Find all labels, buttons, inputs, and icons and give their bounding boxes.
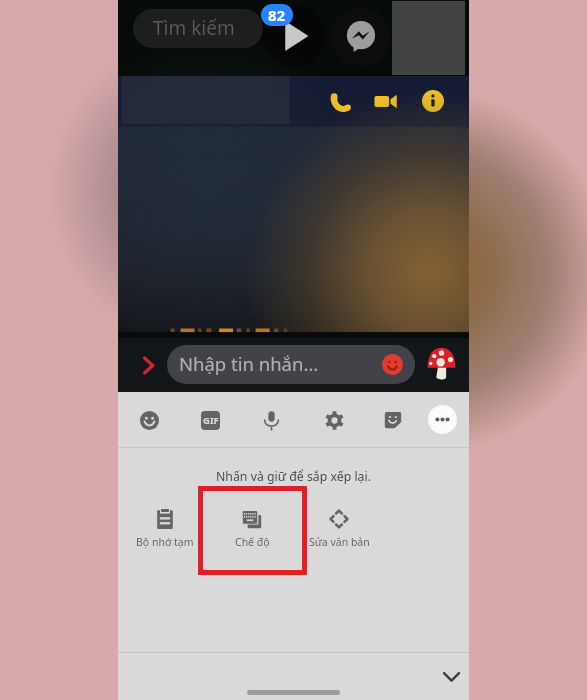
staticText: Nhập tin nhắn...: [179, 351, 319, 376]
button[interactable]: GIF: [192, 402, 228, 438]
button[interactable]: Video call: [367, 83, 403, 119]
button[interactable]: Play Store: [262, 5, 324, 67]
button[interactable]: Show more actions: [132, 349, 164, 381]
staticText: Chế độ: [235, 535, 270, 549]
button[interactable]: Send sticker: [424, 346, 458, 380]
button[interactable]: Sửa văn bản: [289, 509, 389, 549]
staticText: GIF: [203, 414, 219, 427]
button[interactable]: Chế độ: [202, 509, 302, 549]
button[interactable]: Emoji: [382, 354, 403, 375]
button[interactable]: Stickers: [375, 402, 411, 438]
button[interactable]: Keyboard settings: [316, 402, 352, 438]
button[interactable]: Conversation info: [415, 83, 451, 119]
button[interactable]: More options: [428, 405, 457, 434]
button[interactable]: Voice call: [322, 83, 358, 119]
button[interactable]: Voice input: [253, 402, 289, 438]
button[interactable]: Tìm kiếm: [133, 9, 263, 48]
staticText: Nhấn và giữ để sắp xếp lại.: [118, 468, 469, 485]
button[interactable]: Bộ nhớ tạm: [115, 509, 215, 549]
staticText: Bộ nhớ tạm: [136, 535, 194, 549]
staticText: Sửa văn bản: [309, 535, 370, 549]
button[interactable]: Emoji: [131, 402, 167, 438]
staticText: 82: [268, 5, 286, 25]
button[interactable]: Messenger: [331, 7, 390, 66]
button[interactable]: Nhập tin nhắn...: [167, 345, 415, 384]
staticText: Tìm kiếm: [153, 15, 235, 41]
button[interactable]: Hide keyboard: [435, 660, 467, 692]
